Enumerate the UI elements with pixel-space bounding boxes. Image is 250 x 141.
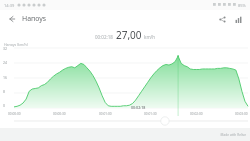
- staticText: 16: [3, 75, 8, 80]
- button[interactable]: Made with Relive: [220, 133, 246, 137]
- staticText: Напоуѕ: [22, 14, 47, 24]
- staticText: 32: [3, 46, 8, 51]
- staticText: 00:01:30: [144, 112, 157, 116]
- staticText: km/h: [144, 34, 156, 40]
- staticText: 27,00: [116, 28, 142, 42]
- staticText: 00:03:00: [235, 112, 248, 116]
- staticText: 24: [3, 60, 8, 65]
- staticText: 00:00:00: [8, 112, 21, 116]
- staticText: 8: [3, 89, 6, 94]
- staticText: 14:39: [4, 3, 15, 8]
- button[interactable]: Back: [5, 12, 19, 26]
- button[interactable]: Share: [215, 12, 229, 26]
- staticText: 00:02:18: [95, 34, 113, 40]
- staticText: Made with Relive: [220, 133, 246, 137]
- staticText: Напоуѕ (km/h): [4, 42, 28, 47]
- staticText: 00:02:00: [190, 112, 203, 116]
- staticText: 00:01:00: [99, 112, 112, 116]
- staticText: 0: [3, 103, 6, 108]
- button[interactable]: Statistics: [231, 12, 245, 26]
- staticText: 85%: [238, 3, 246, 8]
- staticText: 00:00:30: [53, 112, 66, 116]
- staticText: 00:02:18: [131, 105, 146, 110]
